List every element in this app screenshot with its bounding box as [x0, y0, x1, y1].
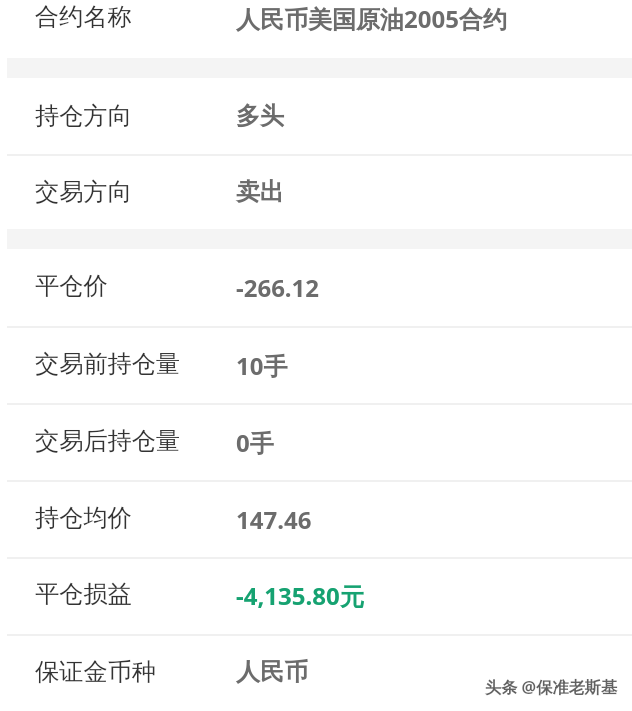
button[interactable]: 保证金币种 [0, 636, 632, 711]
button[interactable]: 平仓损益 [0, 559, 632, 635]
button[interactable]: 合约名称 [0, 0, 632, 58]
staticText: 10手 [236, 349, 288, 382]
staticText: 多头 [236, 101, 284, 131]
staticText: 平仓价 [35, 271, 108, 301]
staticText: 人民币 [236, 657, 308, 687]
staticText: 持仓均价 [35, 503, 132, 533]
button[interactable]: 平仓价 [0, 249, 632, 327]
staticText: 平仓损益 [35, 579, 132, 609]
staticText: 头条 @保准老斯基 [486, 677, 619, 699]
staticText: 147.46 [236, 503, 312, 536]
button[interactable]: 交易前持仓量 [0, 328, 632, 404]
staticText: 交易后持仓量 [35, 426, 181, 456]
staticText: 人民币美国原油2005合约 [236, 2, 507, 35]
button[interactable]: 持仓方向 [0, 78, 632, 155]
staticText: -4,135.80元 [236, 579, 364, 612]
button[interactable]: 交易方向 [0, 156, 632, 229]
staticText: 保证金币种 [35, 657, 156, 687]
button[interactable]: 交易后持仓量 [0, 405, 632, 481]
staticText: 卖出 [236, 177, 284, 207]
staticText: -266.12 [236, 271, 320, 304]
button[interactable]: 持仓均价 [0, 482, 632, 558]
staticText: 合约名称 [35, 2, 132, 32]
staticText: 持仓方向 [35, 101, 132, 131]
staticText: 交易前持仓量 [35, 349, 181, 379]
staticText: 0手 [236, 426, 274, 459]
staticText: 交易方向 [35, 177, 132, 207]
staticText: 头条 @保准老斯基 [485, 676, 618, 698]
